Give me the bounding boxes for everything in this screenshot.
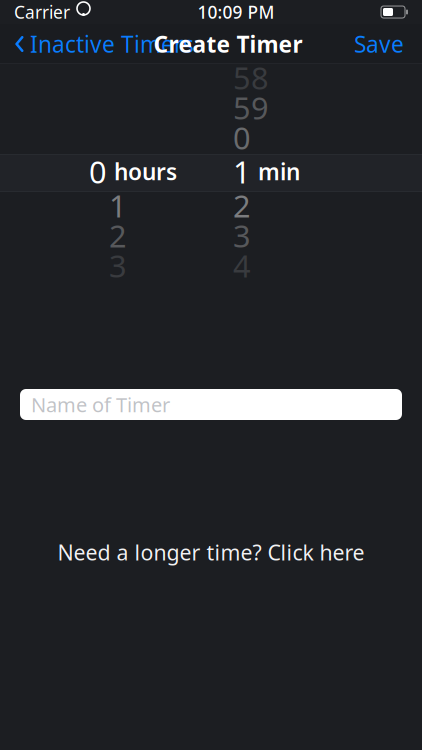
staticText: 3: [233, 215, 251, 256]
staticText: 2: [233, 185, 251, 226]
staticText: 3: [109, 245, 127, 286]
staticText: Create Timer: [153, 29, 302, 59]
staticText: Name of Timer: [31, 391, 170, 418]
button[interactable]: Inactive Timers: [0, 23, 194, 65]
staticText: 10:09 PM: [197, 0, 274, 23]
button[interactable]: Need a longer time? Click here: [41, 530, 380, 574]
staticText: 2: [109, 215, 127, 256]
staticText: Inactive Timers: [30, 29, 194, 59]
button[interactable]: Name of Timer: [20, 389, 402, 420]
button[interactable]: Save: [354, 23, 422, 65]
staticText: min: [258, 156, 300, 186]
staticText: 1: [109, 185, 127, 226]
staticText: 58: [233, 57, 269, 98]
staticText: 0: [233, 117, 251, 158]
staticText: 1: [233, 151, 251, 192]
staticText: 59: [233, 87, 269, 128]
staticText: 4: [233, 245, 251, 286]
staticText: hours: [114, 156, 177, 186]
staticText: 0: [89, 151, 107, 192]
staticText: Need a longer time? Click here: [57, 538, 364, 566]
staticText: Save: [354, 29, 404, 59]
staticText: Carrier: [14, 0, 70, 23]
